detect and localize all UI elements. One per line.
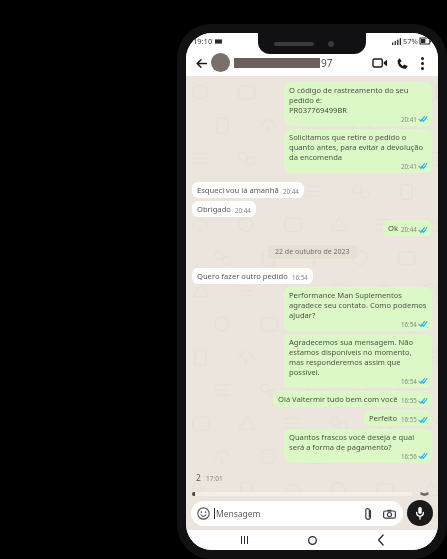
button[interactable]: Agradecemos sua mensagem. Não estamos di… — [284, 334, 432, 388]
button[interactable]: Obrigado — [192, 201, 256, 217]
staticText: 16:55 — [401, 415, 417, 423]
staticText: 20:44 — [283, 187, 299, 195]
button[interactable]: Perfeito — [364, 410, 432, 426]
button[interactable]: 97 — [211, 53, 369, 72]
staticText: Esqueci vou lá amanhã — [197, 185, 279, 195]
button[interactable]: Back — [370, 530, 392, 550]
staticText: 16:54 — [401, 377, 417, 385]
button[interactable]: Solicitamos que retire o pedido o quanto… — [284, 129, 432, 173]
button[interactable]: Quero fazer outro pedido — [192, 268, 313, 284]
staticText: Olá Valtermir tudo bem com você — [278, 394, 398, 404]
button[interactable]: Scroll to bottom — [416, 492, 432, 496]
staticText: Performance Man Suplementos agradece seu… — [289, 290, 427, 320]
staticText: 20:44 — [235, 206, 251, 214]
staticText: Solicitamos que retire o pedido o quanto… — [289, 132, 427, 162]
staticText: 57% — [403, 36, 418, 46]
button[interactable]: Voice message — [407, 500, 433, 526]
button[interactable]: More options — [413, 54, 431, 72]
button[interactable]: Call — [391, 52, 413, 74]
button[interactable]: Back — [191, 53, 211, 73]
staticText: Ok — [388, 223, 398, 233]
staticText: Perfeito — [369, 413, 398, 423]
staticText: Mensagem — [216, 508, 261, 520]
staticText: 20:44 — [401, 225, 417, 233]
button[interactable]: O código de rastreamento do seu pedido é… — [284, 82, 432, 126]
button[interactable]: Camera — [382, 506, 397, 521]
button[interactable]: Você — [192, 492, 412, 496]
staticText: 22 de outubro de 2023 — [275, 247, 350, 257]
staticText: 97 — [321, 56, 333, 70]
staticText: 2 — [196, 472, 201, 484]
button[interactable]: Performance Man Suplementos agradece seu… — [284, 287, 432, 331]
staticText: 17:01 — [206, 474, 223, 483]
staticText: Obrigado — [197, 204, 231, 214]
button[interactable]: Olá Valtermir tudo bem com você — [273, 391, 432, 407]
staticText: Quero fazer outro pedido — [197, 271, 288, 281]
staticText: 20:41 — [401, 162, 417, 170]
other: Emoji — [197, 507, 210, 520]
staticText: 20:41 — [401, 115, 417, 123]
staticText: 16:55 — [401, 396, 417, 404]
button[interactable]: Attach — [361, 506, 376, 521]
staticText: 16:54 — [401, 320, 417, 328]
staticText: 16:56 — [401, 452, 417, 460]
button[interactable]: Home — [301, 530, 323, 550]
staticText: Quantos frascos você deseja e qual será … — [289, 432, 427, 452]
staticText: Agradecemos sua mensagem. Não estamos di… — [289, 337, 427, 377]
staticText: 16:54 — [292, 273, 308, 281]
button[interactable]: Ok — [383, 220, 432, 236]
button[interactable]: Quantos frascos você deseja e qual será … — [284, 429, 432, 463]
staticText: 19:10 — [193, 36, 213, 46]
button[interactable]: Esqueci vou lá amanhã — [192, 182, 304, 198]
button[interactable]: Emoji — [191, 501, 403, 526]
button[interactable]: Recents — [233, 530, 255, 550]
button[interactable]: Video call — [369, 52, 391, 74]
staticText: O código de rastreamento do seu pedido é… — [289, 85, 427, 115]
